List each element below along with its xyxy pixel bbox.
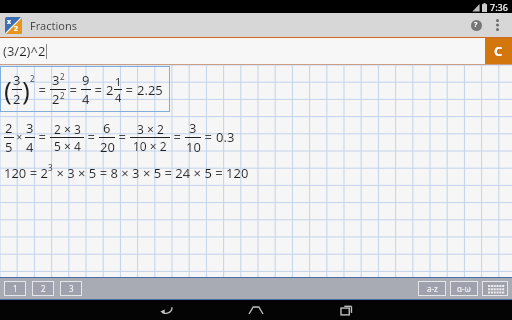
staticText: 4 (26, 138, 34, 156)
button[interactable]: 3 (60, 281, 82, 296)
staticText: 2 (5, 119, 13, 137)
staticText: 9 (82, 71, 90, 89)
staticText: × 3 × 5 = 8 × 3 × 5 = 24 × 5 = 120 (53, 164, 249, 182)
button[interactable]: ( (0, 66, 170, 112)
button[interactable]: 2 (32, 281, 54, 296)
button[interactable]: a-z (418, 281, 446, 296)
button[interactable]: 1 (4, 281, 26, 296)
button[interactable]: Home (211, 300, 301, 320)
staticText: = (35, 81, 50, 99)
staticText: (3/2)^2 (3, 42, 46, 60)
button[interactable]: 2 (4, 118, 235, 156)
staticText: ? (474, 20, 478, 30)
staticText: × (14, 130, 25, 144)
staticText: α-ω (457, 283, 471, 294)
staticText: 120 = 2 (4, 164, 48, 182)
staticText: 3 × 2 (137, 121, 164, 137)
staticText: Fractions (30, 18, 78, 33)
staticText: 2 (106, 81, 114, 99)
staticText: a-z (427, 283, 438, 294)
button[interactable]: More options (487, 15, 507, 35)
button[interactable]: Recent apps (301, 300, 391, 320)
staticText: 6 (103, 119, 111, 137)
staticText: ) (22, 72, 30, 107)
staticText: = (84, 128, 99, 146)
button[interactable]: Help (465, 14, 487, 36)
staticText: = (201, 128, 216, 146)
staticText: 2 (13, 90, 21, 108)
staticText: 2 (14, 24, 19, 34)
staticText: 3 (26, 119, 34, 137)
staticText: 2 (60, 90, 65, 101)
staticText: 2 (41, 283, 46, 294)
button[interactable]: (3/2)^2 (0, 38, 485, 64)
staticText: 7:36 (490, 1, 508, 13)
button[interactable]: α-ω (450, 281, 478, 296)
staticText: 2 × 3 (54, 121, 81, 137)
staticText: 3 (13, 71, 21, 89)
staticText: 2 (52, 90, 60, 108)
staticText: = (122, 81, 137, 99)
staticText: C (494, 42, 503, 60)
staticText: 3 (48, 162, 53, 173)
staticText: 20 (100, 138, 115, 156)
staticText: 1 (13, 283, 18, 294)
staticText: 0.3 (216, 128, 235, 146)
staticText: 3 (52, 71, 60, 89)
staticText: ( (4, 72, 12, 107)
staticText: 3 (189, 119, 197, 137)
staticText: 5 × 4 (54, 138, 81, 154)
staticText: = (35, 128, 50, 146)
button[interactable]: 120 = 2 (4, 162, 249, 184)
staticText: 5 (5, 138, 13, 156)
button[interactable]: Back (121, 300, 211, 320)
staticText: = (66, 81, 81, 99)
staticText: = (91, 81, 106, 99)
staticText: = (115, 128, 130, 146)
staticText: 3 (69, 283, 74, 294)
staticText: 1 (115, 74, 122, 89)
staticText: 2.25 (137, 81, 163, 99)
staticText: 2 (60, 71, 65, 82)
button[interactable]: Keyboard (482, 281, 508, 296)
staticText: x (7, 17, 12, 27)
staticText: 2 (30, 73, 35, 84)
staticText: 4 (115, 90, 122, 105)
staticText: 10 (186, 138, 201, 156)
staticText: 10 × 2 (133, 138, 167, 154)
staticText: 4 (82, 90, 90, 108)
staticText: = (170, 128, 185, 146)
button[interactable]: C (485, 38, 512, 64)
